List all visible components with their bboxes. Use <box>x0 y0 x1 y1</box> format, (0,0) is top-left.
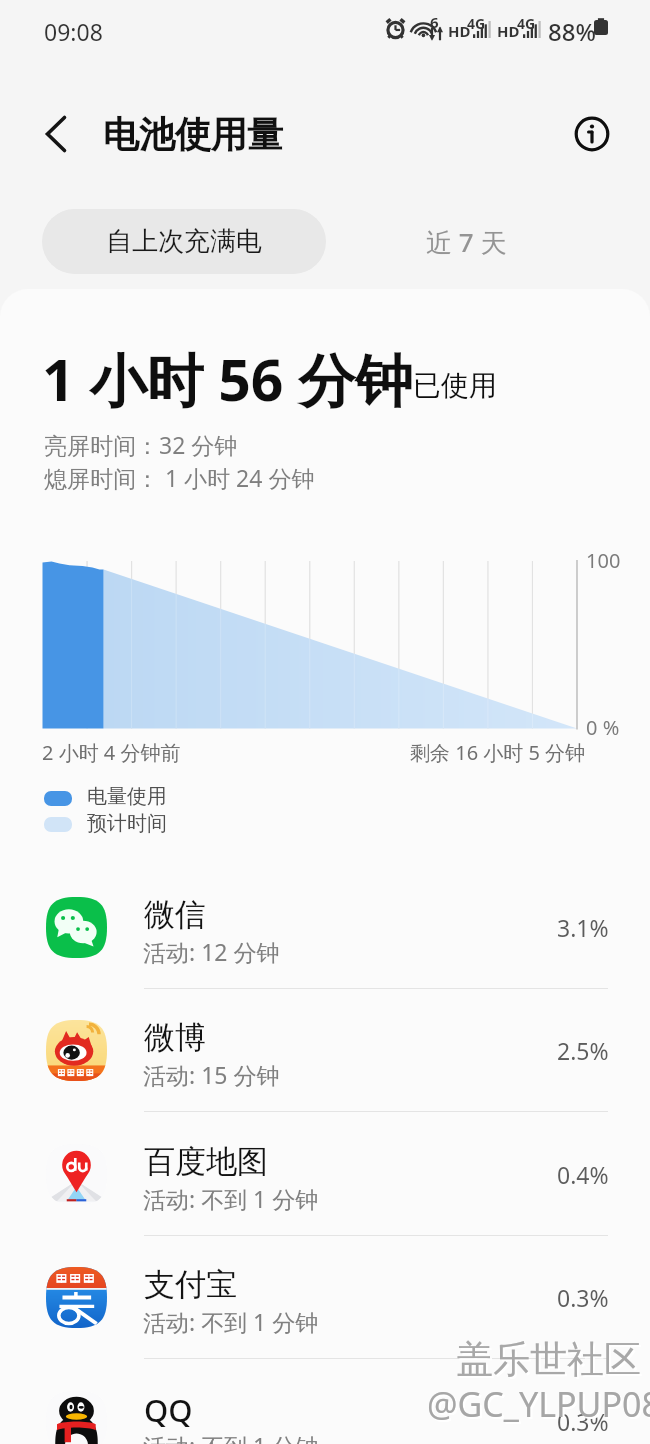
button[interactable]: 支付宝 <box>0 1236 650 1359</box>
staticText: 微信 <box>144 895 206 934</box>
staticText: 盖乐世社区 <box>458 1338 643 1385</box>
staticText: 4G <box>467 14 486 33</box>
staticText: 0.3% <box>557 1406 609 1437</box>
staticText: 已使用 <box>413 368 497 403</box>
staticText: 活动: 不到 1 分钟 <box>143 1430 319 1444</box>
staticText: 活动: 不到 1 分钟 <box>143 1306 319 1337</box>
button[interactable]: QQ <box>0 1360 650 1444</box>
staticText: 活动: 15 分钟 <box>143 1059 280 1090</box>
staticText: @GC_YLPUP08 <box>427 1381 650 1427</box>
button[interactable]: Back <box>28 109 84 165</box>
staticText: 电量使用 <box>87 784 167 809</box>
staticText: 2 小时 4 分钟前 <box>42 739 181 766</box>
staticText: 活动: 不到 1 分钟 <box>143 1183 319 1214</box>
button[interactable]: 近 7 天 <box>327 209 605 274</box>
staticText: 亮屏时间：32 分钟 <box>44 429 238 460</box>
staticText: 09:08 <box>44 16 103 47</box>
staticText: 88% <box>548 15 596 48</box>
staticText: 0 % <box>586 714 620 741</box>
staticText: 熄屏时间： 1 小时 24 分钟 <box>44 462 315 493</box>
button[interactable]: 微博 <box>0 989 650 1112</box>
staticText: 电池使用量 <box>103 112 283 157</box>
staticText: 3.1% <box>557 912 609 943</box>
staticText: 2.5% <box>557 1035 609 1066</box>
button[interactable]: 百度地图 <box>0 1113 650 1236</box>
staticText: 0.4% <box>557 1159 609 1190</box>
staticText: HD <box>448 21 471 41</box>
staticText: HD <box>497 21 520 41</box>
staticText: 活动: 12 分钟 <box>143 936 280 967</box>
staticText: 盖乐世社区 <box>456 1336 641 1383</box>
staticText: 百度地图 <box>144 1142 268 1181</box>
staticText: 0.3% <box>557 1282 609 1313</box>
staticText: 100 <box>586 547 621 574</box>
staticText: 6 <box>430 12 439 32</box>
staticText: 自上次充满电 <box>106 225 262 258</box>
button[interactable]: Info <box>564 106 620 162</box>
staticText: 微博 <box>144 1018 206 1057</box>
staticText: 1 小时 56 分钟 <box>42 340 413 418</box>
staticText: 预计时间 <box>87 811 167 836</box>
staticText: QQ <box>144 1389 193 1431</box>
staticText: 剩余 16 小时 5 分钟 <box>410 739 586 766</box>
button[interactable]: 自上次充满电 <box>42 209 326 274</box>
staticText: 近 7 天 <box>426 224 507 260</box>
button[interactable]: 微信 <box>0 866 650 989</box>
staticText: @GC_YLPUP08 <box>429 1383 650 1429</box>
staticText: 4G <box>517 14 536 33</box>
staticText: 支付宝 <box>144 1265 237 1304</box>
